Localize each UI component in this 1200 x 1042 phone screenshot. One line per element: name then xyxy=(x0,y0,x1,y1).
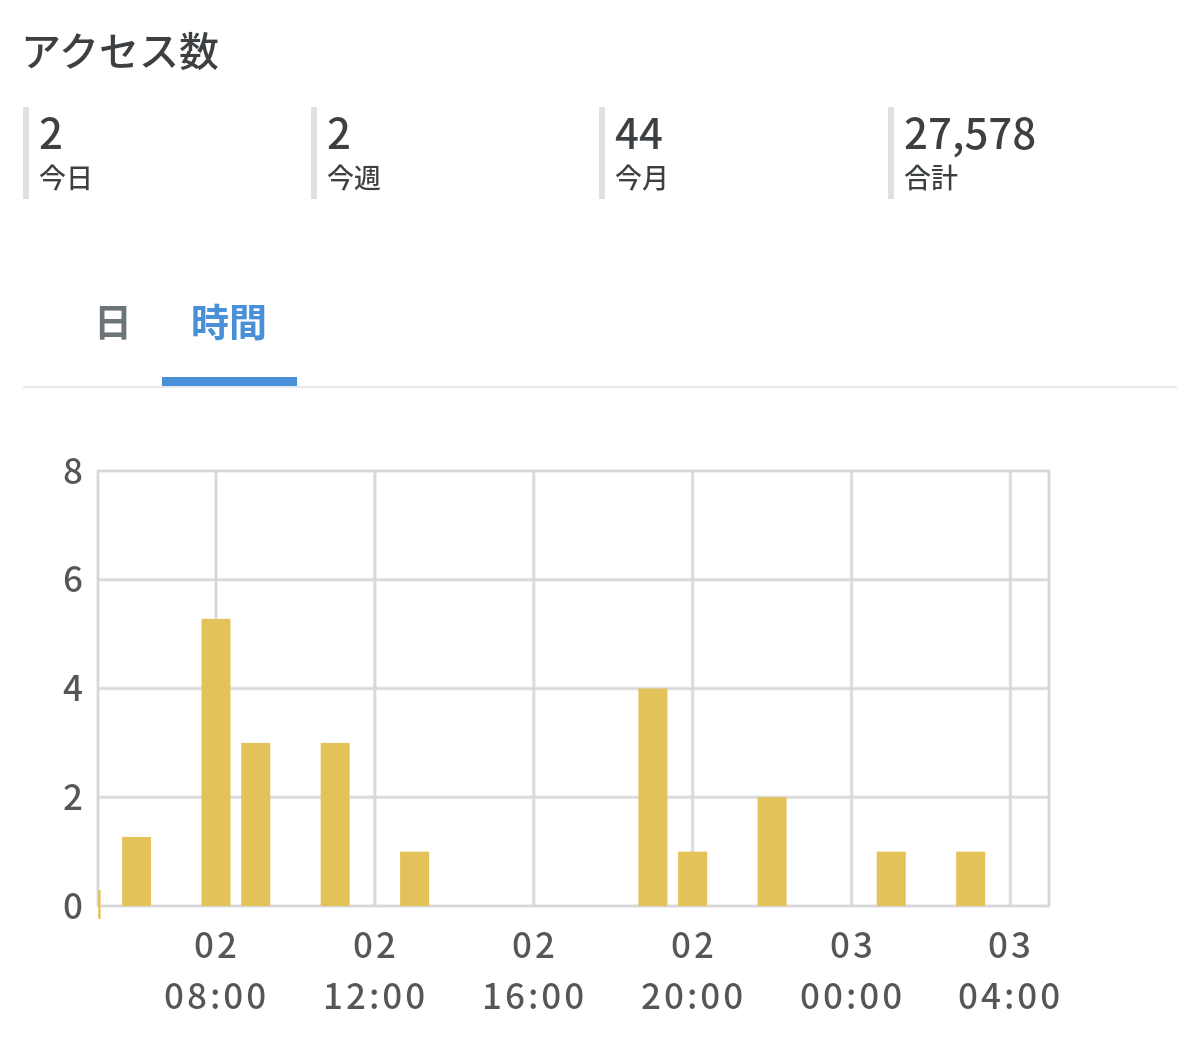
other: Hourly access count chart xyxy=(20,440,1060,1020)
staticText: 44 xyxy=(615,100,663,161)
button[interactable]: 2 xyxy=(23,107,311,199)
staticText: 8 xyxy=(63,443,83,493)
staticText: 04:00 xyxy=(958,968,1064,1019)
staticText: 02 xyxy=(512,917,558,968)
staticText: 03 xyxy=(988,917,1034,968)
button[interactable]: 2 xyxy=(311,107,599,199)
staticText: 02 xyxy=(194,917,240,968)
staticText: 27,578 xyxy=(904,100,1037,161)
staticText: 2 xyxy=(327,100,351,161)
staticText: 0 xyxy=(63,878,83,928)
staticText: 02 xyxy=(353,917,399,968)
staticText: 16:00 xyxy=(482,968,588,1019)
button[interactable]: 時間 xyxy=(162,292,296,388)
staticText: 00:00 xyxy=(800,968,906,1019)
staticText: 2 xyxy=(63,769,83,819)
staticText: 今月 xyxy=(615,157,669,196)
staticText: 03 xyxy=(830,917,876,968)
button[interactable]: 27,578 xyxy=(888,107,1177,199)
button[interactable]: 日 xyxy=(46,292,180,388)
staticText: 日 xyxy=(94,292,133,347)
staticText: 合計 xyxy=(904,157,958,196)
staticText: 02 xyxy=(671,917,717,968)
staticText: 20:00 xyxy=(641,968,747,1019)
staticText: 4 xyxy=(63,660,83,710)
staticText: 今週 xyxy=(327,157,381,196)
button[interactable]: 44 xyxy=(599,107,888,199)
staticText: アクセス数 xyxy=(21,20,219,78)
staticText: 12:00 xyxy=(323,968,429,1019)
staticText: 時間 xyxy=(191,292,268,347)
staticText: 2 xyxy=(39,100,63,161)
staticText: 08:00 xyxy=(164,968,270,1019)
staticText: 6 xyxy=(63,551,83,601)
staticText: 今日 xyxy=(39,157,93,196)
